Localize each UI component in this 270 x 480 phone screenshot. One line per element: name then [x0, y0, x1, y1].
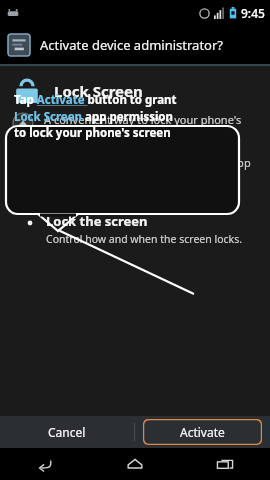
button[interactable]: Back	[0, 448, 90, 480]
staticText: Lock the screen	[46, 212, 148, 230]
button[interactable]: Collapse	[12, 112, 34, 134]
staticText: Activate	[180, 424, 225, 440]
staticText: Cancel	[48, 424, 86, 440]
staticText: Tap Activate button to grant Lock Screen…	[14, 92, 180, 140]
staticText: A convenient way to lock your phone's sc…	[44, 112, 260, 141]
button[interactable]: Activate	[135, 416, 270, 448]
staticText: Activate device administrator?	[40, 36, 223, 54]
staticText: Control how and when the screen locks.	[46, 232, 242, 246]
staticText: Activating this administrator will allow…	[12, 155, 258, 200]
button[interactable]: Cancel	[0, 416, 134, 448]
button[interactable]: Home	[90, 448, 180, 480]
staticText: 9:45	[241, 5, 265, 21]
button[interactable]: Recent apps	[180, 448, 270, 480]
staticText: Lock Screen	[54, 81, 143, 101]
